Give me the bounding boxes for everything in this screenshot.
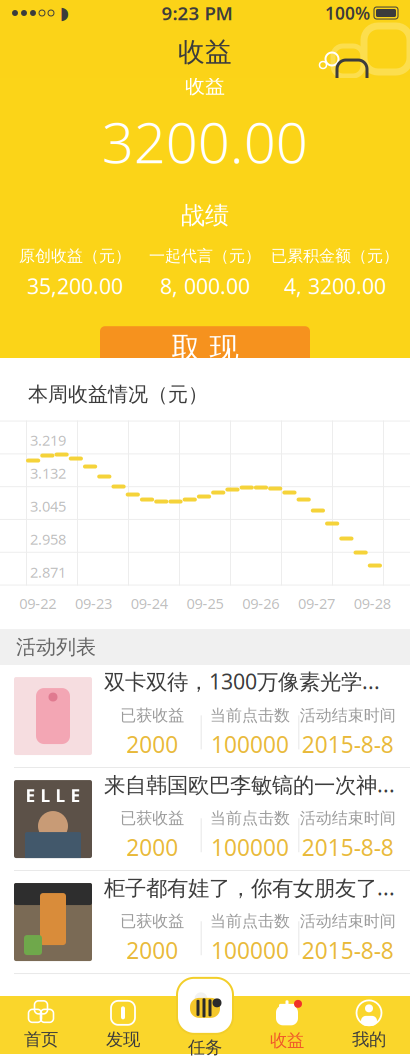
staticText: 已获收益 [120,705,184,725]
staticText: 09-25 [186,594,223,613]
button[interactable]: 收益 [246,996,328,1054]
staticText: 取 现 [171,330,238,366]
staticText: 本周收益情况（元） [28,382,208,407]
staticText: 2000 [126,832,178,862]
staticText: 当前点击数 [210,911,290,931]
staticText: 来自韩国欧巴李敏镐的一次神秘邀约⊠... [104,770,396,798]
staticText: 09-28 [354,594,391,613]
staticText: 9:23 PM [161,1,232,25]
staticText: 当前点击数 [210,705,290,725]
staticText: 100000 [211,729,289,759]
staticText: 柜子都有娃了，你有女朋友了吗(￣▽... [104,873,396,901]
staticText: 3.132 [30,463,66,483]
staticText: 首页 [24,1029,58,1050]
staticText: ◗ [60,3,69,23]
staticText: 35,200.00 [27,272,123,300]
staticText: 战绩 [181,201,229,230]
staticText: 收益 [178,36,232,68]
button[interactable]: 双卡双待，1300万像素光学防抖相机... [0,665,410,768]
staticText: 100000 [211,832,289,862]
staticText: 双卡双待，1300万像素光学防抖相机... [104,667,396,695]
staticText: 收益 [185,74,225,98]
staticText: 2000 [126,729,178,759]
staticText: 任务 [188,1037,222,1058]
staticText: 活动结束时间 [300,705,396,725]
staticText: 09-23 [75,594,112,613]
staticText: 3.045 [30,496,66,516]
staticText: 2015-8-8 [302,729,394,759]
staticText: 09-27 [298,594,335,613]
staticText: 2.958 [30,529,66,549]
staticText: 8, 000.00 [160,272,250,300]
button[interactable]: 取 现 [100,326,310,370]
staticText: 09-22 [19,594,56,613]
button[interactable]: 任务 [164,978,246,1058]
button[interactable]: 发现 [82,996,164,1054]
staticText: 我的 [352,1029,386,1050]
staticText: 原创收益（元） [19,246,131,266]
staticText: 发现 [106,1029,140,1050]
staticText: 09-24 [131,594,168,613]
staticText: 2000 [126,935,178,965]
staticText: 收益 [270,1030,304,1051]
button[interactable]: E L L E [0,768,410,871]
staticText: 2.871 [30,562,66,582]
staticText: 一起代言（元） [149,246,261,266]
staticText: 已累积金额（元） [271,246,399,266]
staticText: 2015-8-8 [302,832,394,862]
button[interactable]: 柜子都有娃了，你有女朋友了吗(￣▽... [0,871,410,974]
staticText: 3200.00 [102,104,308,179]
staticText: 100000 [211,935,289,965]
staticText: 已获收益 [120,808,184,828]
button[interactable]: 我的 [328,996,410,1054]
staticText: E L L E [25,784,80,807]
staticText: 100% [325,1,370,24]
staticText: 当前点击数 [210,808,290,828]
staticText: 4, 3200.00 [284,272,386,300]
staticText: 2015-8-8 [302,935,394,965]
staticText: 已获收益 [120,911,184,931]
staticText: 09-26 [242,594,279,613]
staticText: 活动结束时间 [300,808,396,828]
staticText: 活动结束时间 [300,911,396,931]
staticText: 3.219 [30,430,66,450]
button[interactable]: 首页 [0,996,82,1054]
staticText: 活动列表 [16,635,96,659]
